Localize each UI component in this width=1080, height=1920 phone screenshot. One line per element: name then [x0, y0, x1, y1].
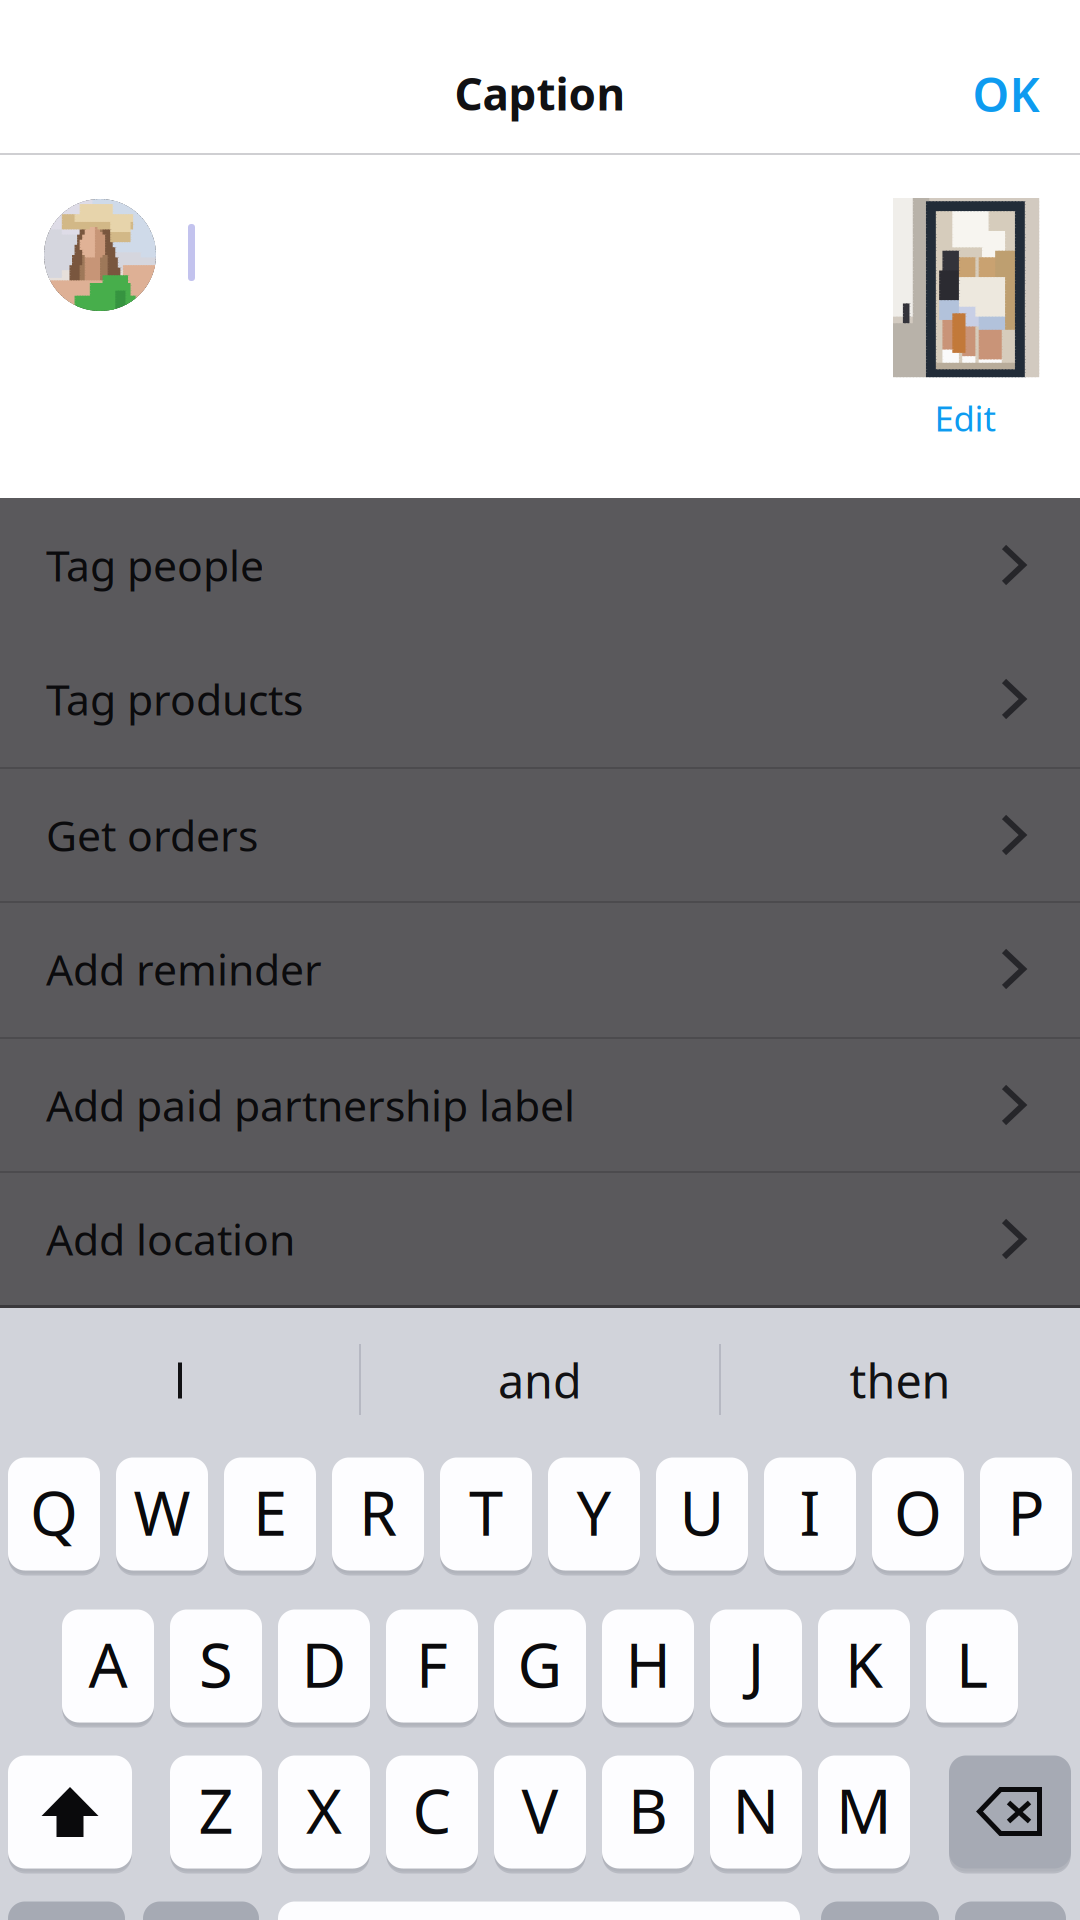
- staticText: Tag people: [46, 537, 264, 593]
- button[interactable]: D: [278, 1607, 370, 1725]
- staticText: T: [469, 1471, 503, 1553]
- button[interactable]: return: [955, 1899, 1066, 1920]
- button[interactable]: L: [926, 1607, 1018, 1725]
- staticText: I: [799, 1471, 820, 1553]
- staticText: Caption: [454, 64, 625, 123]
- staticText: L: [956, 1623, 988, 1705]
- button[interactable]: and: [360, 1308, 720, 1453]
- button[interactable]: W: [116, 1455, 208, 1573]
- button[interactable]: H: [602, 1607, 694, 1725]
- button[interactable]: G: [494, 1607, 586, 1725]
- staticText: then: [849, 1349, 950, 1411]
- staticText: and: [498, 1349, 582, 1411]
- button[interactable]: M: [818, 1753, 910, 1871]
- staticText: X: [306, 1769, 342, 1851]
- button[interactable]: J: [710, 1607, 802, 1725]
- button[interactable]: Get orders: [0, 768, 1080, 902]
- staticText: U: [679, 1471, 724, 1553]
- staticText: Add reminder: [46, 941, 322, 997]
- button[interactable]: Add paid partnership label: [0, 1038, 1080, 1172]
- staticText: O: [894, 1471, 942, 1553]
- staticText: OK: [972, 63, 1039, 125]
- staticText: Edit: [934, 395, 996, 441]
- button[interactable]: U: [656, 1455, 748, 1573]
- button[interactable]: Edit: [893, 386, 1038, 450]
- button[interactable]: O: [872, 1455, 964, 1573]
- button[interactable]: X: [278, 1753, 370, 1871]
- button[interactable]: Add reminder: [0, 902, 1080, 1036]
- staticText: F: [416, 1623, 448, 1705]
- button[interactable]: Tag products: [0, 632, 1080, 766]
- staticText: H: [625, 1623, 670, 1705]
- staticText: B: [628, 1769, 668, 1851]
- button[interactable]: S: [170, 1607, 262, 1725]
- button[interactable]: OK: [941, 39, 1071, 149]
- staticText: V: [521, 1769, 558, 1851]
- staticText: Get orders: [46, 807, 258, 863]
- button[interactable]: P: [980, 1455, 1072, 1573]
- staticText: C: [412, 1769, 451, 1851]
- staticText: M: [836, 1769, 892, 1851]
- staticText: G: [517, 1623, 562, 1705]
- button[interactable]: Shift: [8, 1753, 132, 1871]
- button[interactable]: space: [278, 1899, 800, 1920]
- button[interactable]: F: [386, 1607, 478, 1725]
- button[interactable]: V: [494, 1753, 586, 1871]
- staticText: Z: [198, 1769, 233, 1851]
- staticText: W: [133, 1471, 190, 1553]
- staticText: P: [1007, 1471, 1044, 1553]
- button[interactable]: [0, 1308, 360, 1453]
- button[interactable]: R: [332, 1455, 424, 1573]
- staticText: R: [359, 1471, 397, 1553]
- button[interactable]: Next keyboard: [821, 1899, 939, 1920]
- button[interactable]: Delete: [949, 1753, 1071, 1871]
- button[interactable]: I: [764, 1455, 856, 1573]
- staticText: Y: [576, 1471, 611, 1553]
- button[interactable]: Add location: [0, 1172, 1080, 1306]
- button[interactable]: E: [224, 1455, 316, 1573]
- button[interactable]: Z: [170, 1753, 262, 1871]
- button[interactable]: K: [818, 1607, 910, 1725]
- staticText: D: [301, 1623, 346, 1705]
- staticText: E: [253, 1471, 287, 1553]
- staticText: Q: [30, 1471, 78, 1553]
- staticText: Add location: [46, 1211, 295, 1267]
- button[interactable]: Q: [8, 1455, 100, 1573]
- staticText: J: [747, 1623, 764, 1705]
- button[interactable]: T: [440, 1455, 532, 1573]
- button[interactable]: C: [386, 1753, 478, 1871]
- button[interactable]: N: [710, 1753, 802, 1871]
- button[interactable]: A: [62, 1607, 154, 1725]
- button[interactable]: then: [720, 1308, 1080, 1453]
- button[interactable]: Emoji: [143, 1899, 259, 1920]
- staticText: Tag products: [46, 671, 303, 727]
- staticText: Add paid partnership label: [46, 1077, 575, 1133]
- button[interactable]: Y: [548, 1455, 640, 1573]
- staticText: K: [845, 1623, 883, 1705]
- staticText: A: [88, 1623, 127, 1705]
- button[interactable]: B: [602, 1753, 694, 1871]
- button[interactable]: Tag people: [0, 498, 1080, 632]
- staticText: S: [199, 1623, 233, 1705]
- staticText: N: [732, 1769, 779, 1851]
- button[interactable]: 123: [8, 1899, 125, 1920]
